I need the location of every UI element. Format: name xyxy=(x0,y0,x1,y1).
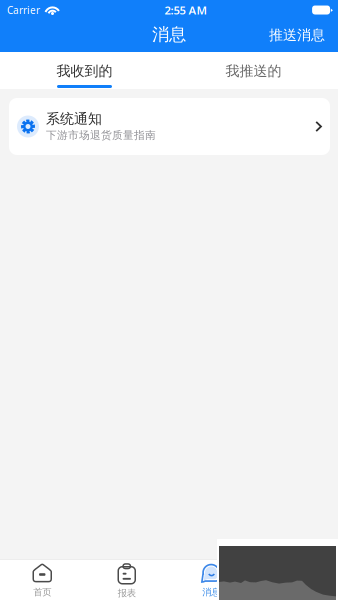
button[interactable]: 我的 xyxy=(253,559,338,600)
staticText: 推送消息 xyxy=(269,26,325,44)
staticText: 报表 xyxy=(118,587,136,599)
button[interactable]: 推送消息 xyxy=(258,20,338,52)
staticText: 下游市场退货质量指南 xyxy=(46,129,156,142)
button[interactable]: 首页 xyxy=(0,559,84,600)
staticText: 消息 xyxy=(152,24,186,45)
staticText: 系统通知 xyxy=(46,110,102,128)
button[interactable]: 消息 xyxy=(169,559,253,600)
staticText: 我收到的 xyxy=(56,62,112,80)
button[interactable]: 我推送的 xyxy=(169,52,338,89)
staticText: 消息 xyxy=(202,586,220,598)
staticText: 我推送的 xyxy=(225,62,281,80)
staticText: 首页 xyxy=(33,586,51,598)
button[interactable]: 系统通知 xyxy=(9,98,330,155)
staticText: Carrier xyxy=(7,3,40,17)
staticText: 2:55 AM xyxy=(164,2,207,18)
button[interactable]: 报表 xyxy=(84,559,169,600)
button[interactable]: 我收到的 xyxy=(0,52,169,89)
